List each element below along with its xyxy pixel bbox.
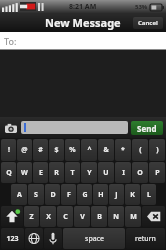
button[interactable]: S	[28, 184, 44, 205]
button[interactable]: Backspace	[142, 206, 165, 227]
staticText: &	[103, 145, 109, 155]
button[interactable]: !	[1, 139, 16, 161]
button[interactable]: E	[33, 162, 48, 183]
staticText: *	[121, 145, 125, 155]
button[interactable]: P	[149, 162, 165, 183]
staticText: O	[137, 168, 143, 178]
staticText: S	[34, 190, 38, 200]
button[interactable]	[21, 121, 128, 134]
staticText: #	[38, 145, 43, 155]
staticText: return	[135, 234, 156, 244]
staticText: L	[147, 190, 151, 200]
staticText: New Message	[45, 15, 121, 30]
button[interactable]: $	[49, 139, 64, 161]
staticText: 8:21 AM	[69, 2, 97, 12]
staticText: @	[21, 145, 28, 155]
button[interactable]: &	[98, 139, 114, 161]
staticText: 53%	[135, 3, 148, 11]
button[interactable]: @	[17, 139, 32, 161]
staticText: K	[130, 190, 135, 200]
staticText: Y	[87, 168, 92, 178]
staticText: $	[54, 145, 59, 155]
staticText: )	[156, 145, 159, 155]
button[interactable]: ^	[81, 139, 97, 161]
staticText: space	[85, 234, 104, 244]
button[interactable]: space	[63, 228, 125, 249]
button[interactable]: X	[40, 206, 56, 227]
staticText: T	[70, 168, 75, 178]
staticText: F	[67, 190, 71, 200]
button[interactable]: (	[132, 139, 148, 161]
button[interactable]: M	[125, 206, 141, 227]
button[interactable]: A	[11, 184, 27, 205]
button[interactable]: return	[126, 228, 165, 249]
staticText: G	[82, 190, 88, 200]
button[interactable]: T	[65, 162, 80, 183]
button[interactable]: D	[45, 184, 60, 205]
staticText: D	[50, 190, 56, 200]
button[interactable]: H	[93, 184, 108, 205]
button[interactable]: Z	[24, 206, 39, 227]
button[interactable]: F	[61, 184, 76, 205]
staticText: U	[103, 168, 109, 178]
button[interactable]: To:	[0, 32, 166, 50]
button[interactable]: U	[98, 162, 114, 183]
staticText: Cancel	[138, 19, 158, 27]
staticText: !	[8, 145, 10, 155]
staticText: E	[39, 168, 43, 178]
button[interactable]: O	[132, 162, 148, 183]
button[interactable]: L	[141, 184, 156, 205]
button[interactable]: J	[109, 184, 124, 205]
staticText: V	[80, 212, 85, 222]
staticText: X	[46, 212, 51, 222]
button[interactable]: K	[125, 184, 140, 205]
button[interactable]: C	[57, 206, 73, 227]
staticText: N	[113, 212, 119, 222]
staticText: W	[21, 168, 28, 178]
button[interactable]: B	[91, 206, 107, 227]
button[interactable]: Y	[81, 162, 97, 183]
button[interactable]: N	[108, 206, 124, 227]
staticText: C	[63, 212, 68, 222]
staticText: I	[122, 168, 125, 178]
staticText: ^	[87, 145, 92, 155]
button[interactable]: Send	[131, 121, 163, 135]
button[interactable]: R	[49, 162, 64, 183]
staticText: R	[54, 168, 59, 178]
staticText: B	[97, 212, 102, 222]
button[interactable]: 123	[1, 228, 24, 249]
staticText: 123	[6, 234, 19, 244]
button[interactable]: W	[17, 162, 32, 183]
staticText: P	[155, 168, 160, 178]
staticText: Z	[29, 212, 34, 222]
staticText: A	[17, 190, 22, 200]
staticText: Send	[137, 123, 157, 134]
staticText: M	[130, 212, 137, 222]
button[interactable]: )	[149, 139, 165, 161]
staticText: J	[115, 190, 118, 200]
button[interactable]: #	[33, 139, 48, 161]
button[interactable]: V	[74, 206, 90, 227]
staticText: To:	[4, 35, 17, 47]
button[interactable]: Attach photo	[3, 121, 18, 135]
button[interactable]: I	[115, 162, 131, 183]
button[interactable]: G	[77, 184, 92, 205]
button[interactable]: %	[65, 139, 80, 161]
staticText: (	[139, 145, 142, 155]
button[interactable]: Cancel	[133, 17, 163, 29]
button[interactable]: Switch keyboard	[25, 228, 43, 249]
button[interactable]: Shift	[1, 206, 23, 227]
button[interactable]: *	[115, 139, 131, 161]
button[interactable]: Voice input	[44, 228, 62, 249]
staticText: H	[98, 190, 104, 200]
staticText: %	[69, 145, 76, 155]
staticText: Q	[6, 168, 12, 178]
button[interactable]: Q	[1, 162, 16, 183]
